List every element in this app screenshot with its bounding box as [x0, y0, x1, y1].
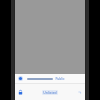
- staticText: Unlisted: [43, 90, 57, 95]
- button[interactable]: Lock: [15, 84, 85, 100]
- button[interactable]: Expand: [77, 90, 82, 95]
- other: Lock: [18, 90, 23, 95]
- staticText: Public: [55, 77, 65, 81]
- button[interactable]: Link visibility: [15, 74, 85, 83]
- other: Link visibility: [18, 76, 23, 81]
